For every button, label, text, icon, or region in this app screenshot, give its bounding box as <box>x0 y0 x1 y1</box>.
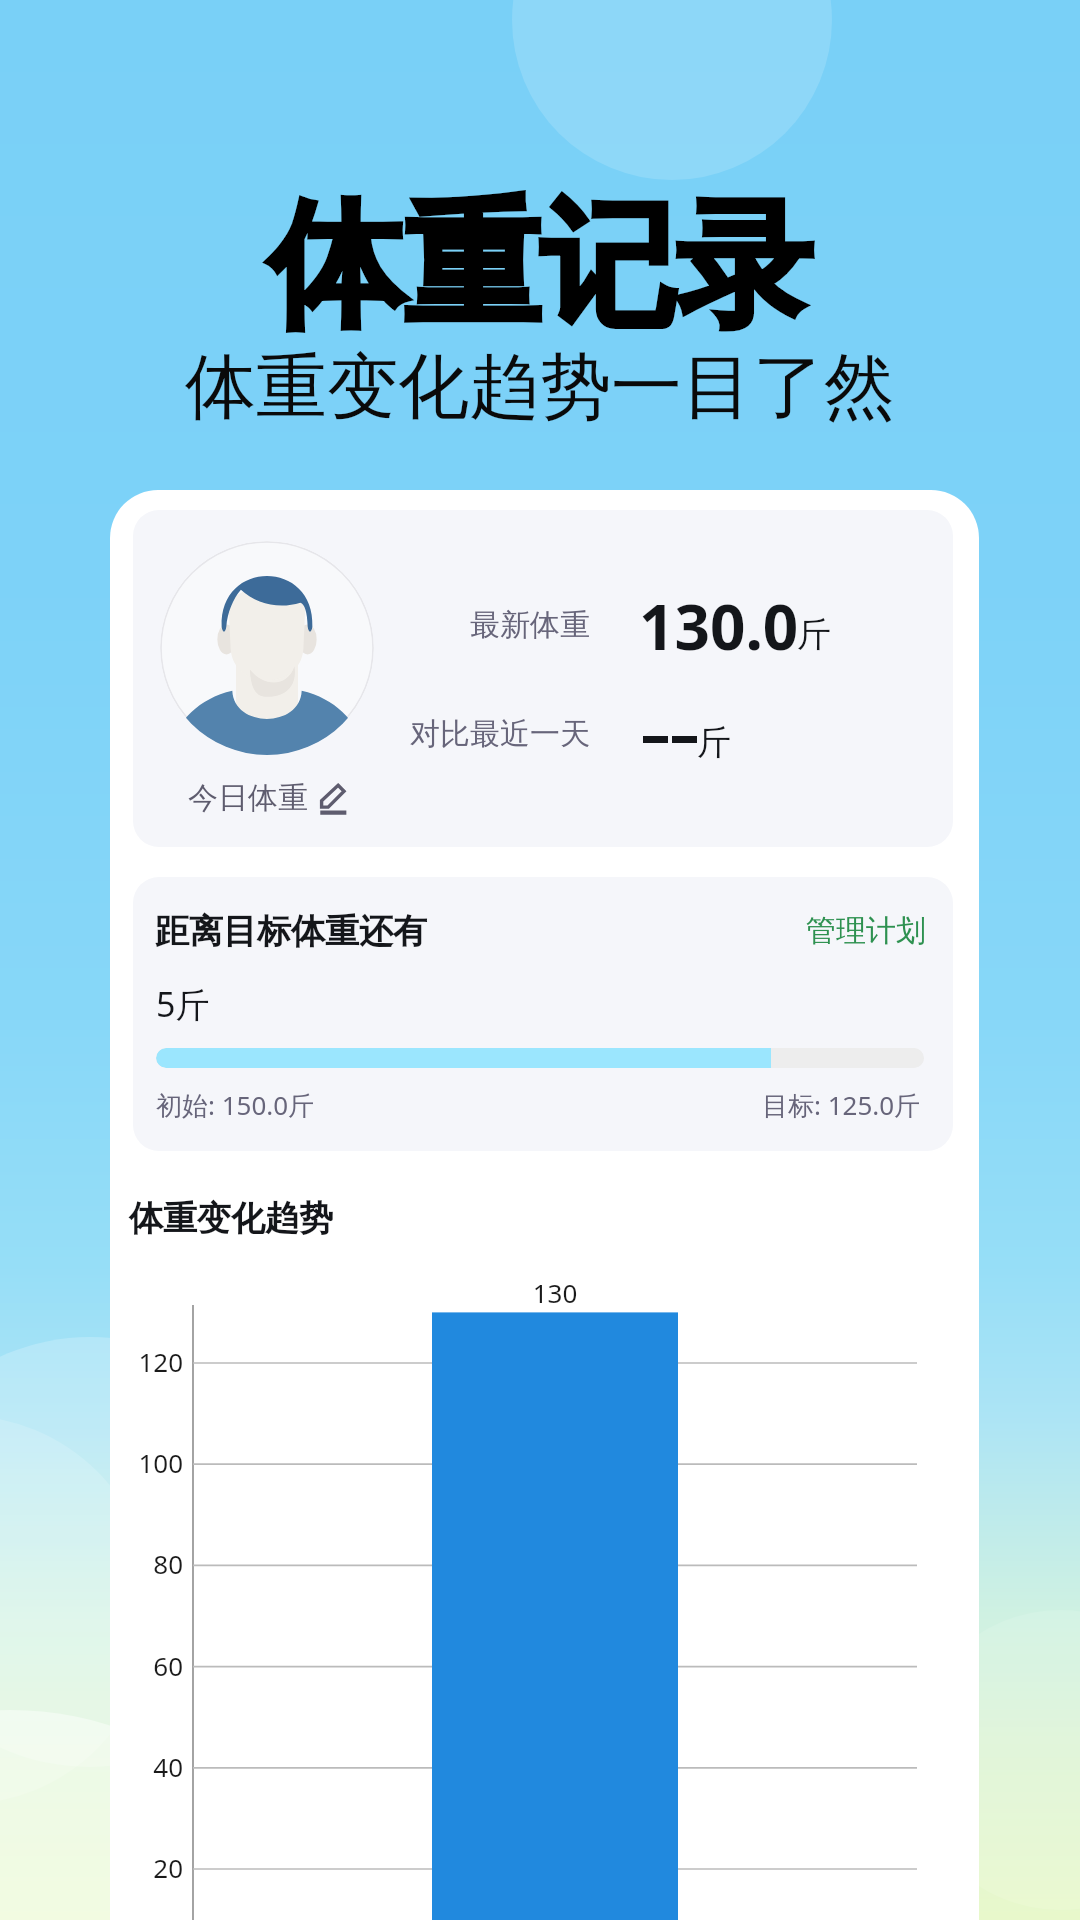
button[interactable]: Profile avatar <box>160 541 374 755</box>
staticText: 目标: 125.0斤 <box>762 1087 921 1123</box>
staticText: 130 <box>432 1275 678 1310</box>
staticText: 对比最近一天 <box>133 715 590 753</box>
staticText: 距离目标体重还有 <box>155 910 427 953</box>
staticText: 体重变化趋势 <box>129 1197 333 1240</box>
button[interactable]: 管理计划 <box>806 912 926 950</box>
staticText: 体重记录 <box>268 181 812 352</box>
staticText: 斤 <box>697 721 731 764</box>
staticText: 80 <box>110 1546 183 1581</box>
button[interactable]: 今日体重 <box>185 776 351 820</box>
staticText: 120 <box>110 1344 183 1379</box>
staticText: 管理计划 <box>806 912 926 950</box>
staticText: 5斤 <box>156 981 210 1027</box>
staticText: 体重变化趋势一目了然 <box>185 343 895 432</box>
staticText: 130.0 <box>639 584 799 668</box>
staticText: 初始: 150.0斤 <box>156 1087 315 1123</box>
staticText: 60 <box>110 1648 183 1683</box>
staticText: 100 <box>110 1445 183 1480</box>
staticText: 今日体重 <box>188 779 308 817</box>
staticText: 最新体重 <box>133 606 590 644</box>
staticText: 斤 <box>797 613 831 656</box>
staticText: 20 <box>110 1850 183 1885</box>
staticText: 40 <box>110 1749 183 1784</box>
other: Edit today's weight <box>315 782 348 815</box>
